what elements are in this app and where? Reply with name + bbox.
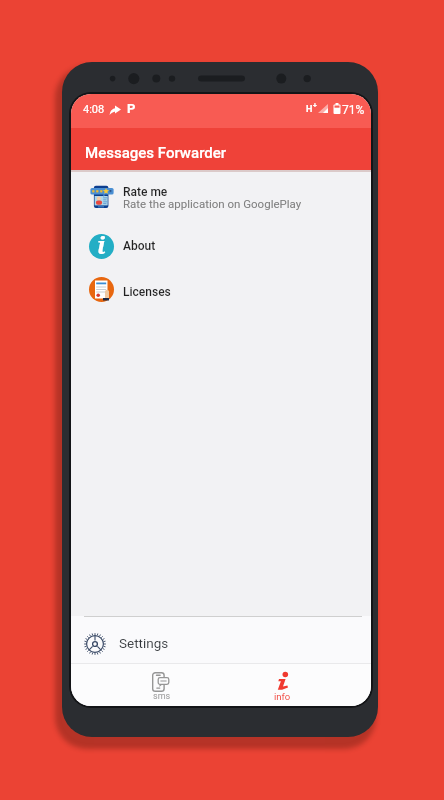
staticText: P xyxy=(127,101,136,116)
staticText: info xyxy=(274,691,291,702)
staticText: 4:08 xyxy=(83,103,105,116)
staticText: Rate me xyxy=(123,185,168,199)
button[interactable]: Licenses xyxy=(71,266,371,313)
staticText: Licenses xyxy=(123,285,171,299)
staticText: Rate the application on GooglePlay xyxy=(123,197,302,210)
button[interactable] xyxy=(86,663,221,706)
button[interactable]: i xyxy=(71,219,371,266)
button[interactable] xyxy=(221,663,356,706)
staticText: About xyxy=(123,239,156,253)
staticText: sms xyxy=(153,691,171,702)
staticText: + xyxy=(313,102,317,110)
staticText: Settings xyxy=(119,635,169,651)
staticText: H xyxy=(306,104,313,115)
staticText: 71% xyxy=(342,103,365,117)
staticText: i xyxy=(97,228,106,261)
button[interactable]: Rate me xyxy=(71,172,371,219)
staticText: Messages Forwarder xyxy=(85,144,227,162)
button[interactable]: Settings xyxy=(71,616,371,663)
